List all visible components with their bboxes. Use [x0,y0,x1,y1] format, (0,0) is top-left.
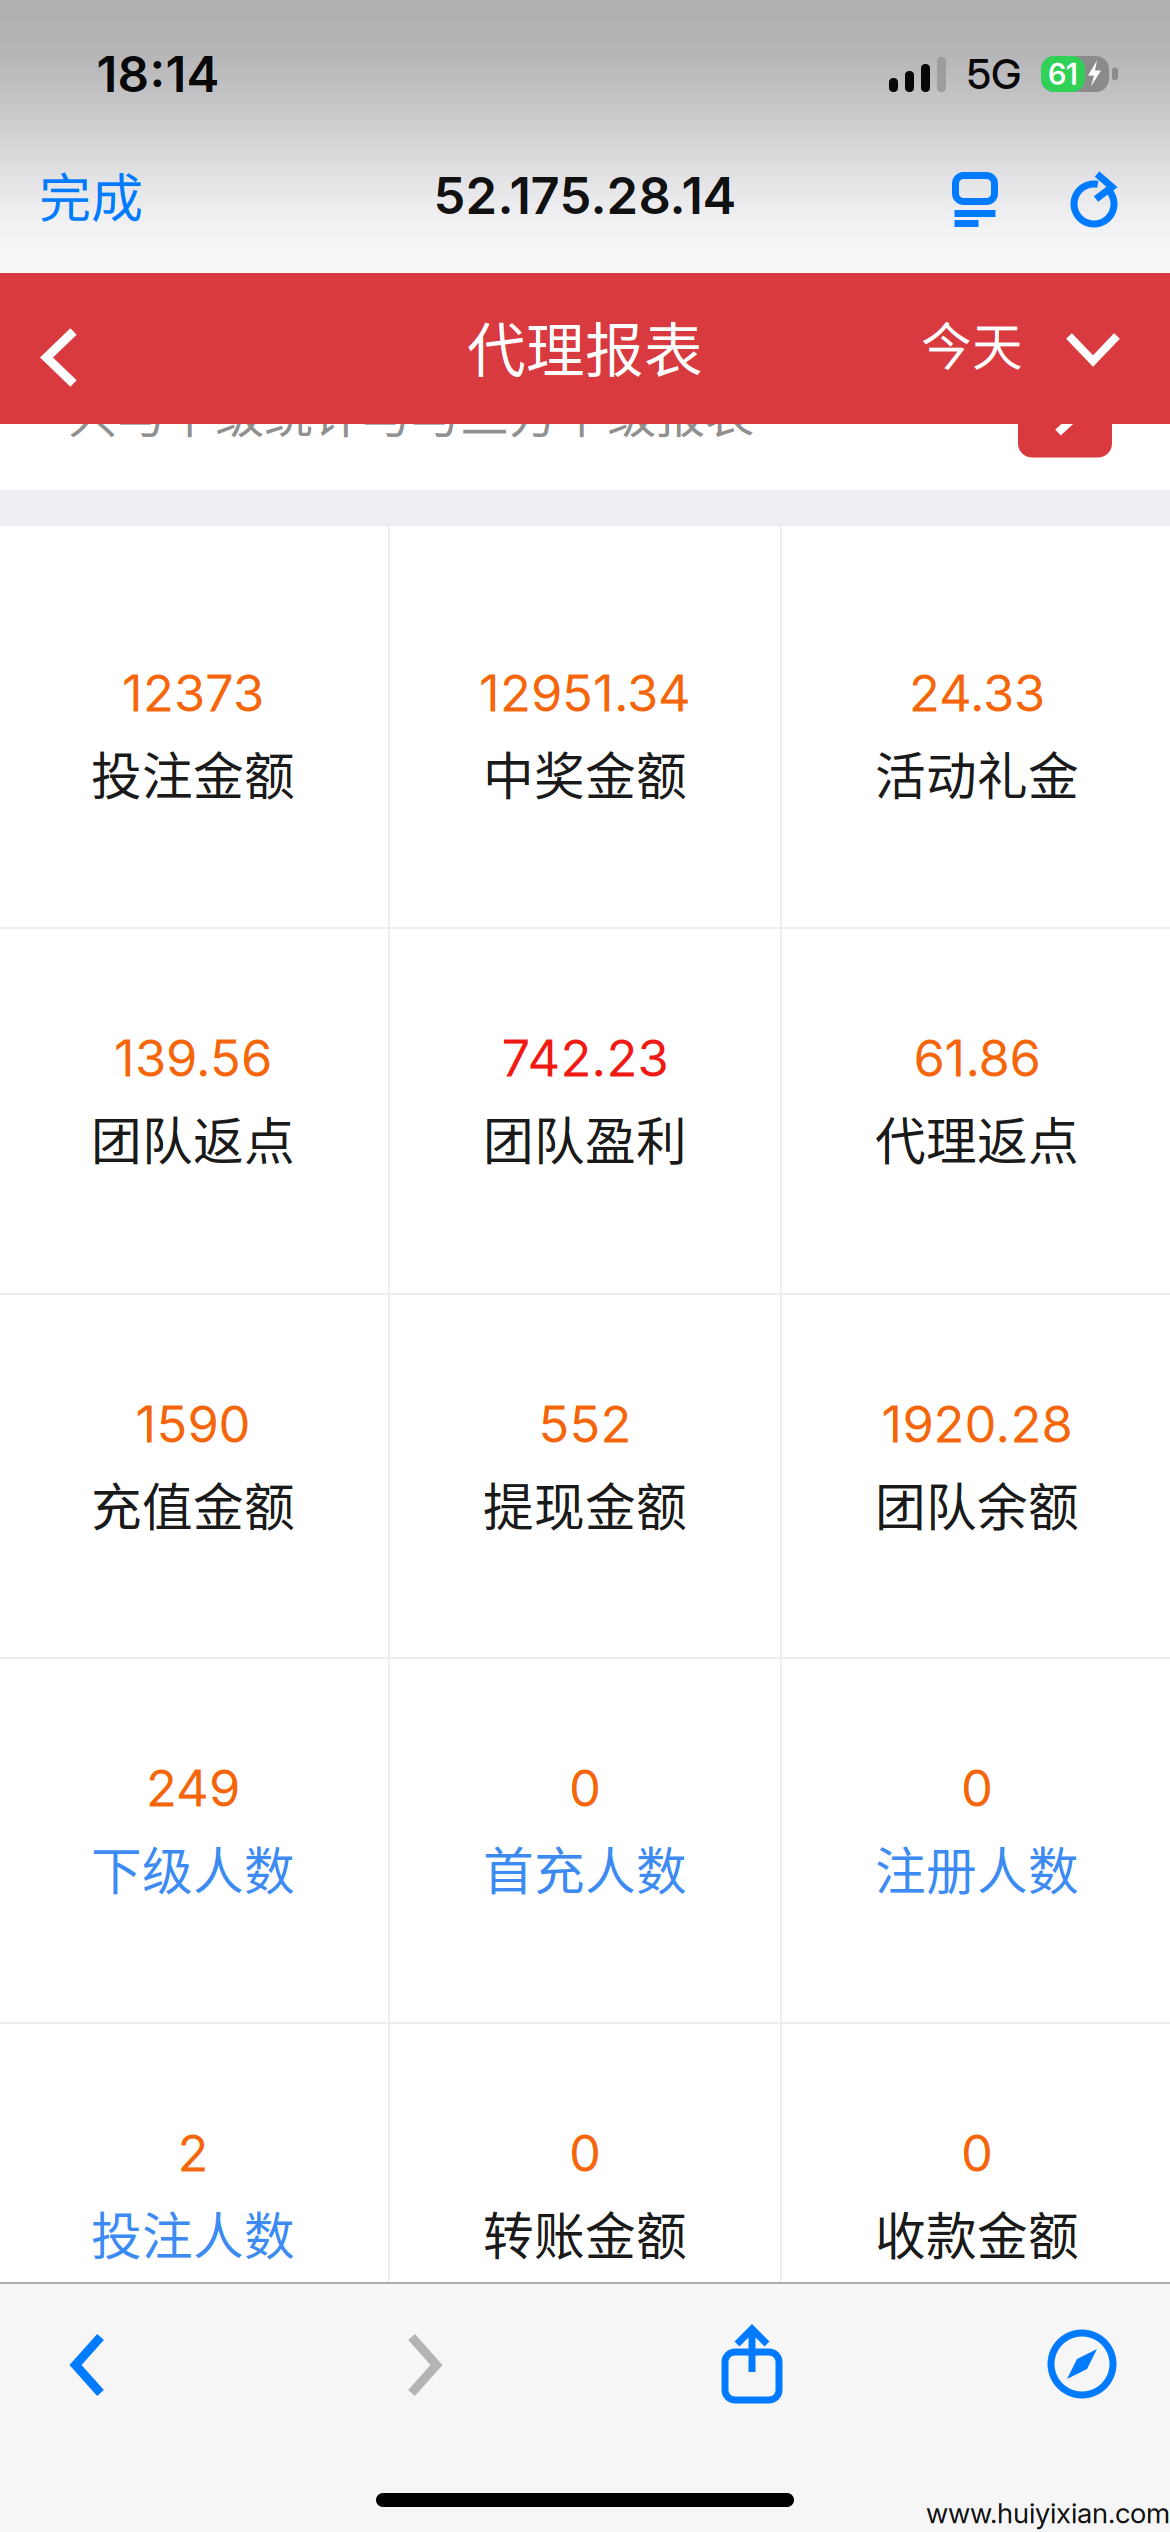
staticText: 代理报表 [467,304,703,389]
staticText: 今天 [921,307,1023,380]
staticText: 下级人数 [91,1831,295,1905]
staticText: 0 [961,1757,993,1819]
staticText: 中奖金额 [483,736,687,810]
staticText: 742.23 [501,1027,668,1089]
button[interactable]: Forward [336,2284,512,2412]
staticText: 12951.34 [479,662,691,724]
staticText: 18:14 [96,44,219,104]
staticText: 首充人数 [483,1831,687,1905]
staticText: 52.175.28.14 [433,165,736,226]
staticText: 转账金额 [483,2196,687,2270]
button[interactable]: Reload [1048,138,1138,250]
staticText: 充值金额 [91,1467,295,1541]
staticText: 投注人数 [91,2196,295,2270]
staticText: 24.33 [909,662,1045,724]
staticText: www.huiyixian.com [926,2496,1170,2530]
staticText: 团队返点 [91,1101,295,1175]
staticText: 投注金额 [91,736,295,810]
staticText: 注册人数 [875,1831,1079,1905]
staticText: 0 [961,2122,993,2184]
staticText: 1920.28 [881,1393,1072,1455]
staticText: 团队盈利 [483,1101,687,1175]
button[interactable]: Reader view [930,138,1020,250]
button[interactable]: Back [0,2284,176,2412]
staticText: 收款金额 [875,2196,1079,2270]
staticText: 活动礼金 [875,736,1079,810]
staticText: 1590 [135,1393,250,1455]
staticText: 12373 [122,662,264,724]
staticText: 提现金额 [483,1467,687,1541]
button[interactable]: Bookmarks [994,2284,1170,2412]
staticText: 代理返点 [875,1101,1079,1175]
button[interactable]: Back [14,273,106,424]
staticText: 139.56 [114,1027,272,1089]
staticText: 完成 [39,157,143,232]
button[interactable]: Share [665,2284,841,2412]
staticText: 61 [1048,56,1078,92]
staticText: 552 [538,1393,631,1455]
staticText: 团队余额 [875,1467,1079,1541]
staticText: 2 [177,2122,208,2184]
staticText: 0 [569,2122,601,2184]
staticText: 0 [569,1757,601,1819]
staticText: 5G [967,49,1021,99]
button[interactable]: 完成 [39,138,189,250]
staticText: 249 [146,1757,240,1819]
button[interactable]: 今天 [921,273,1119,424]
staticText: 61.86 [913,1027,1040,1089]
staticText: 只与下级统计与与三方下级报表 [68,375,754,447]
